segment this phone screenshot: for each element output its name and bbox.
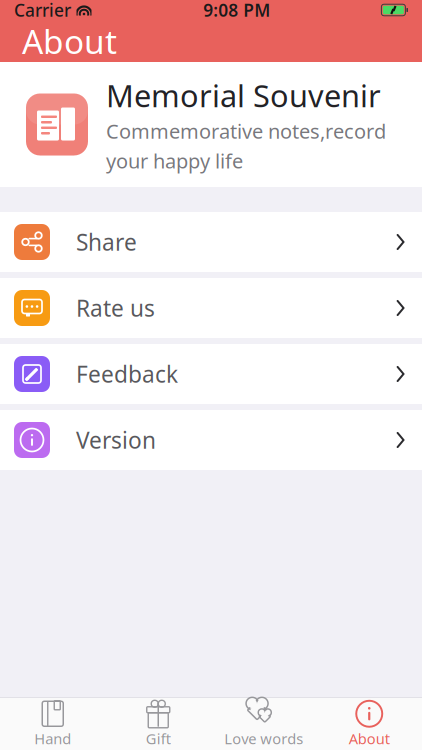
staticText: About <box>22 19 117 63</box>
staticText: Memorial Souvenir <box>106 75 381 116</box>
button[interactable]: Rate us <box>0 278 422 338</box>
button[interactable]: About <box>316 698 422 750</box>
staticText: 9:08 PM <box>203 0 270 21</box>
staticText: Share <box>76 227 137 257</box>
staticText: Love words <box>224 729 303 748</box>
staticText: About <box>349 729 390 748</box>
staticText: Version <box>76 425 156 455</box>
staticText: Feedback <box>76 359 178 389</box>
staticText: Carrier <box>14 0 71 21</box>
button[interactable]: Feedback <box>0 344 422 404</box>
button[interactable]: Version <box>0 410 422 470</box>
staticText: Commemorative notes,record your happy li… <box>106 118 386 174</box>
staticText: Gift <box>146 729 171 748</box>
staticText: Rate us <box>76 293 155 323</box>
button[interactable]: Share <box>0 212 422 272</box>
button[interactable]: Hand <box>0 698 105 750</box>
button[interactable]: Gift <box>105 698 211 750</box>
staticText: Hand <box>34 729 71 748</box>
button[interactable]: Love words <box>211 698 316 750</box>
